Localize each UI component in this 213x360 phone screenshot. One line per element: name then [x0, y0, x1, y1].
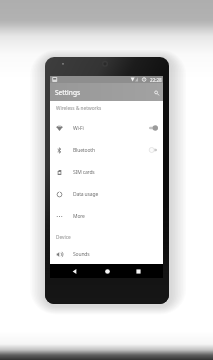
- button[interactable]: Toggle Bluetooth: [149, 146, 158, 154]
- staticText: Device: [56, 234, 71, 240]
- button[interactable]: Toggle Wi-Fi: [149, 124, 158, 132]
- staticText: Wireless & networks: [56, 105, 102, 111]
- staticText: Data usage: [73, 191, 99, 198]
- button[interactable]: SIM cards: [50, 161, 163, 183]
- button[interactable]: Sounds: [50, 244, 163, 264]
- staticText: Bluetooth: [73, 147, 95, 154]
- staticText: Sounds: [73, 251, 90, 258]
- button[interactable]: Back: [69, 266, 80, 277]
- button[interactable]: Search: [150, 86, 161, 97]
- staticText: Wi-Fi: [73, 125, 84, 132]
- button[interactable]: More: [50, 205, 163, 227]
- staticText: SIM cards: [73, 169, 95, 176]
- button[interactable]: Data usage: [50, 183, 163, 205]
- staticText: Settings: [55, 88, 81, 97]
- button[interactable]: Bluetooth: [50, 139, 163, 161]
- button[interactable]: Wi-Fi: [50, 117, 163, 139]
- staticText: 22:28: [150, 77, 162, 83]
- staticText: More: [73, 213, 85, 220]
- button[interactable]: Home: [102, 266, 113, 277]
- button[interactable]: Recents: [133, 266, 144, 277]
